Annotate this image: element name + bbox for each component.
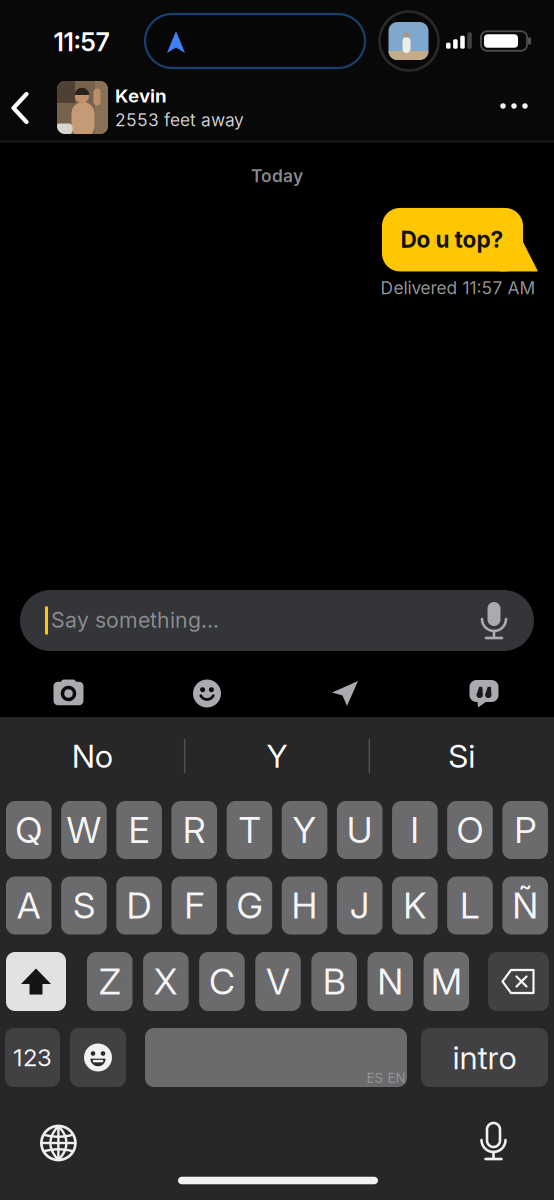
button[interactable]: F [171,876,217,934]
staticText: B [323,960,346,1003]
button[interactable]: intro [421,1028,548,1087]
button[interactable]: O [447,801,493,859]
staticText: L [460,884,480,927]
button[interactable]: Dictation [476,1121,510,1161]
staticText: 11:57 [53,27,109,57]
button[interactable]: U [337,801,382,859]
button[interactable]: N [367,952,413,1011]
staticText: S [73,884,95,927]
button[interactable]: W [61,801,107,859]
button[interactable]: H [282,876,327,934]
button[interactable]: Say something [20,590,534,651]
button[interactable]: M [424,952,469,1011]
staticText: ES EN [366,1070,405,1086]
button[interactable]: 123 [5,1028,60,1087]
staticText: intro [452,1039,516,1076]
staticText: G [236,884,262,927]
staticText: U [347,809,373,851]
staticText: Y [293,809,317,851]
staticText: N [377,960,403,1003]
button[interactable]: Shift [6,952,66,1011]
button[interactable]: Si [377,724,547,788]
button[interactable]: Send location [332,681,358,706]
staticText: X [154,960,178,1003]
button[interactable]: Next keyboard [39,1124,77,1162]
staticText: P [514,809,536,851]
staticText: M [431,960,462,1003]
staticText: V [266,960,290,1003]
button[interactable]: Ñ [502,876,548,934]
button[interactable]: C [199,952,245,1011]
button[interactable]: Z [87,952,132,1011]
button[interactable]: L [447,876,493,934]
staticText: A [17,884,41,927]
staticText: Kevin [115,85,167,107]
button[interactable]: No [7,724,177,788]
staticText: Delivered 11:57 AM [380,278,535,298]
staticText: W [66,809,101,851]
staticText: J [350,884,370,927]
staticText: Q [15,809,42,851]
button[interactable]: I [392,801,438,859]
button[interactable]: Stickers [192,678,222,708]
button[interactable]: J [337,876,382,934]
button[interactable]: B [311,952,357,1011]
staticText: Si [448,737,475,775]
staticText: Say something... [51,607,219,633]
button[interactable]: T [227,801,272,859]
staticText: F [184,884,204,927]
staticText: R [183,809,206,851]
staticText: Today [251,166,303,186]
button[interactable]: Camera [51,678,85,708]
button[interactable]: Delete [488,952,549,1011]
staticText: Ñ [512,884,538,927]
staticText: 123 [13,1043,52,1072]
button[interactable]: Y [192,724,362,788]
button[interactable]: P [502,801,548,859]
staticText: C [209,960,235,1003]
button[interactable]: Back [11,92,29,124]
button[interactable]: Voice message [477,600,511,640]
button[interactable]: G [227,876,272,934]
button[interactable]: E [116,801,162,859]
staticText: D [127,884,152,927]
staticText: No [72,737,113,775]
staticText: Do u top? [400,226,503,253]
button[interactable]: X [143,952,189,1011]
staticText: H [292,884,318,927]
button[interactable]: Y [282,801,327,859]
button[interactable]: V [255,952,301,1011]
button[interactable]: D [116,876,162,934]
staticText: K [403,884,426,927]
button[interactable]: Saved phrases [469,680,499,708]
button[interactable]: Q [6,801,52,859]
staticText: E [129,809,150,851]
button[interactable]: K [392,876,438,934]
button[interactable]: S [61,876,107,934]
button[interactable]: Space [145,1028,407,1087]
button[interactable]: Emoji [70,1028,126,1087]
staticText: Y [266,737,287,775]
button[interactable]: More options [492,91,536,121]
staticText: O [456,809,483,851]
staticText: T [238,809,260,851]
staticText: I [410,809,419,851]
button[interactable]: R [171,801,217,859]
staticText: Z [99,960,121,1003]
button[interactable]: A [6,876,52,934]
staticText: 2553 feet away [115,110,244,130]
button[interactable]: Kevin [57,80,347,134]
